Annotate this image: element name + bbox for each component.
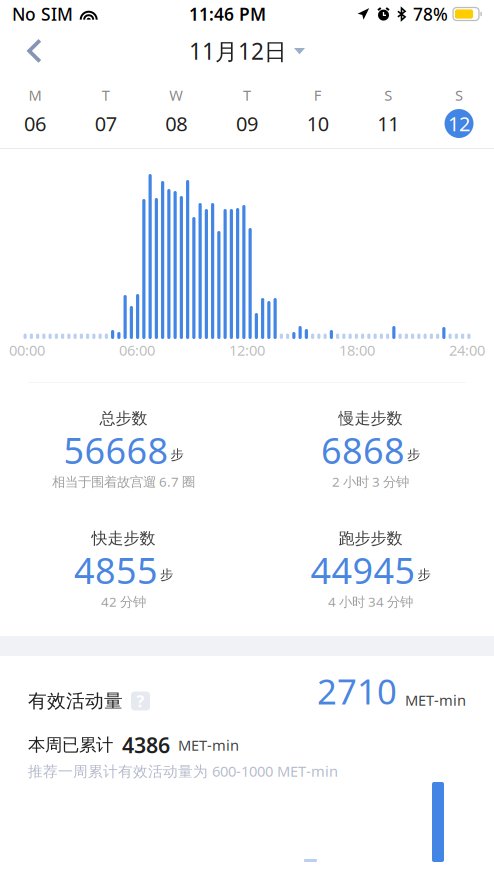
staticText: 步 [417, 567, 430, 583]
staticText: 快走步数 [91, 529, 155, 548]
staticText: W [169, 85, 183, 105]
staticText: 42 分钟 [101, 593, 146, 610]
staticText: 2 小时 3 分钟 [332, 473, 409, 490]
staticText: 4 小时 34 分钟 [328, 593, 413, 610]
button[interactable]: 11月12日 [189, 28, 305, 74]
staticText: F [314, 85, 322, 105]
staticText: S [384, 85, 392, 105]
button[interactable]: S [426, 82, 492, 139]
staticText: 6868 [321, 426, 405, 474]
button[interactable]: F [285, 82, 351, 139]
button[interactable]: W [143, 82, 209, 139]
staticText: 相当于围着故宫遛 6.7 圈 [52, 473, 195, 490]
staticText: 09 [236, 110, 258, 137]
button[interactable]: S [355, 82, 421, 139]
staticText: 06:00 [119, 340, 155, 360]
staticText: 总步数 [99, 409, 147, 428]
staticText: 78% [413, 2, 448, 25]
button[interactable]: Back [0, 28, 60, 74]
staticText: MET-min [178, 735, 239, 755]
staticText: 本周已累计 [28, 734, 113, 756]
staticText: MET-min [405, 690, 466, 710]
staticText: 步 [170, 447, 183, 463]
staticText: 12 [448, 110, 470, 137]
staticText: M [28, 85, 41, 105]
staticText: 11 [377, 110, 399, 137]
button[interactable]: M [2, 82, 68, 139]
staticText: 00:00 [9, 340, 45, 360]
staticText: 56668 [63, 426, 168, 474]
staticText: 11月12日 [189, 36, 287, 66]
staticText: 慢走步数 [338, 409, 402, 428]
staticText: 有效活动量 [28, 689, 123, 712]
staticText: 推荐一周累计有效活动量为 600-1000 MET-min [28, 761, 338, 781]
staticText: 24:00 [449, 340, 485, 360]
staticText: 08 [165, 110, 187, 137]
button[interactable]: T [214, 82, 280, 139]
staticText: 07 [95, 110, 117, 137]
staticText: No SIM [12, 2, 73, 25]
staticText: 4855 [74, 546, 158, 594]
staticText: 12:00 [229, 340, 265, 360]
staticText: 跑步步数 [338, 529, 402, 548]
button[interactable]: T [73, 82, 139, 139]
staticText: ? [136, 690, 144, 712]
staticText: 步 [160, 567, 173, 583]
staticText: 10 [307, 110, 329, 137]
staticText: 步 [407, 447, 420, 463]
staticText: 06 [24, 110, 46, 137]
staticText: 4386 [122, 731, 170, 759]
staticText: 11:46 PM [189, 2, 266, 25]
staticText: T [102, 85, 110, 105]
staticText: 2710 [317, 668, 397, 714]
staticText: 44945 [310, 546, 415, 594]
staticText: 18:00 [339, 340, 375, 360]
staticText: S [455, 85, 463, 105]
staticText: T [243, 85, 251, 105]
button[interactable]: What is effective activity volume [131, 691, 150, 710]
